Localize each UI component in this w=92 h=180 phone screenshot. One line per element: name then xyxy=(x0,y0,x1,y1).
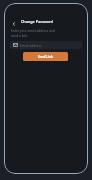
staticText: Enter your email address and send a link… xyxy=(11,29,71,37)
button[interactable]: Email address xyxy=(10,41,82,49)
staticText: Email address xyxy=(20,43,42,47)
button[interactable]: Back xyxy=(9,19,19,29)
button[interactable]: Send Link xyxy=(23,52,68,61)
staticText: Change Password xyxy=(21,19,53,24)
staticText: Send Link xyxy=(38,55,53,59)
